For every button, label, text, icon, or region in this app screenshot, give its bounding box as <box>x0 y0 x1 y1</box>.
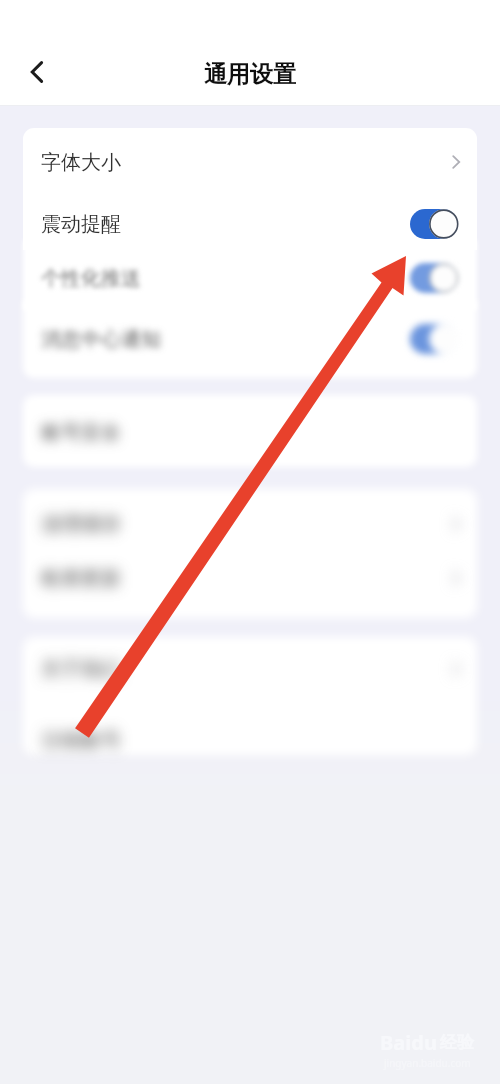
button[interactable]: 注销账号 <box>23 712 477 768</box>
button[interactable]: 消息中心通知 <box>23 310 477 368</box>
staticText: 消息中心通知 <box>41 327 161 352</box>
staticText: 账号安全 <box>41 420 121 445</box>
button[interactable]: 关于我们 <box>23 641 477 697</box>
staticText: 注销账号 <box>41 728 121 753</box>
button[interactable]: 清理缓存 <box>23 496 477 552</box>
button[interactable]: 字体大小 <box>23 131 477 193</box>
staticText: 清理缓存 <box>41 512 121 537</box>
button[interactable]: 检查更新 <box>23 550 477 606</box>
staticText: 关于我们 <box>41 657 121 682</box>
staticText: 字体大小 <box>41 150 121 175</box>
staticText: 通用设置 <box>204 60 296 89</box>
button[interactable]: Back <box>17 50 61 94</box>
button[interactable]: 账号安全 <box>23 404 477 460</box>
button[interactable]: 个性化推送 <box>23 249 477 307</box>
staticText: 检查更新 <box>41 566 121 591</box>
button[interactable]: 震动提醒 <box>23 193 477 255</box>
staticText: 震动提醒 <box>41 212 121 237</box>
staticText: 个性化推送 <box>41 266 141 291</box>
